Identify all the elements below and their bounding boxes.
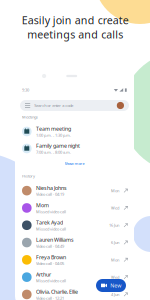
staticText: Search or enter a code (34, 103, 73, 108)
staticText: 7:00 a.m. - 8:00 a.m. (36, 149, 71, 155)
staticText: Video call · 12:21 (36, 295, 64, 300)
button[interactable]: Niesha Johns (15, 182, 134, 199)
staticText: Arthur (36, 271, 51, 278)
staticText: Missed video call (36, 226, 66, 231)
staticText: 4 Jun (111, 292, 119, 297)
staticText: 9:30 (22, 87, 29, 93)
button[interactable]: New (96, 279, 126, 292)
staticText: Video call · 04:49 (36, 243, 64, 249)
button[interactable]: Freya Brown (15, 251, 134, 268)
button[interactable]: Arthur (15, 268, 134, 286)
staticText: Easily join and create meetings and call… (21, 13, 128, 41)
staticText: Mom (36, 202, 49, 209)
staticText: Olivia, Charlie, Ellie (36, 288, 78, 295)
staticText: New (110, 282, 121, 289)
staticText: Wed (111, 205, 119, 211)
staticText: Family game night (36, 142, 80, 149)
staticText: History (22, 173, 35, 179)
button[interactable]: Show more (15, 157, 134, 170)
staticText: 6 Jun (111, 240, 119, 245)
staticText: Missed video call (36, 209, 66, 214)
staticText: Mon (111, 257, 119, 262)
button[interactable]: Olivia, Charlie, Ellie (15, 286, 134, 300)
staticText: Niesha Johns (36, 184, 67, 191)
button[interactable]: Tarek Ayad (15, 217, 134, 234)
button[interactable]: Team meeting (15, 123, 134, 140)
staticText: Video call · 04:05 (36, 261, 64, 266)
staticText: Video call · 04:19 (36, 192, 64, 197)
staticText: Wed (111, 274, 119, 280)
button[interactable]: Lauren Williams (15, 234, 134, 251)
staticText: Meetings (22, 114, 38, 120)
staticText: Tarek Ayad (36, 219, 63, 226)
staticText: Show more (64, 161, 84, 166)
staticText: Lauren Williams (36, 236, 74, 243)
staticText: Team meeting (36, 125, 71, 132)
staticText: Freya Brown (36, 254, 66, 261)
staticText: 1:00 p.m. - 1:30 p.m. (36, 132, 71, 138)
staticText: Mon (111, 188, 119, 193)
staticText: Missed video call (36, 278, 66, 283)
button[interactable]: Family game night (15, 140, 134, 157)
button[interactable]: Mom (15, 199, 134, 217)
staticText: 16 Jun (109, 223, 119, 228)
